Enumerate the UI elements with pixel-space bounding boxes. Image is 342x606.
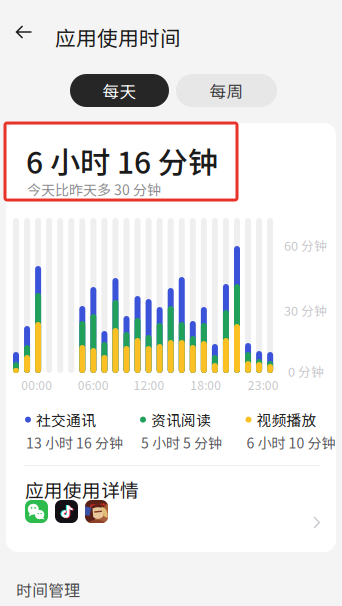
staticText: 6 小时 16 分钟 (26, 139, 218, 182)
staticText: 18:00 (190, 376, 221, 393)
staticText: 6 小时 10 分钟 (246, 432, 335, 452)
staticText: 每周 (209, 78, 243, 102)
staticText: 30 分钟 (284, 301, 327, 319)
staticText: 时间管理 (16, 578, 80, 601)
staticText: 06:00 (78, 376, 109, 393)
staticText: 00:00 (21, 376, 52, 393)
staticText: 社交通讯 (36, 409, 96, 430)
staticText: 每天 (102, 78, 136, 102)
staticText: 12:00 (133, 376, 164, 393)
button[interactable]: 每天 (70, 74, 169, 107)
button[interactable]: 应用使用详情 (19, 472, 333, 549)
staticText: 5 小时 5 分钟 (141, 432, 222, 452)
staticText: 视频播放 (256, 409, 316, 430)
staticText: 应用使用时间 (55, 22, 181, 52)
staticText: 0 分钟 (288, 362, 324, 380)
staticText: 13 小时 16 分钟 (26, 432, 123, 452)
staticText: 23:00 (248, 376, 279, 393)
staticText: 应用使用详情 (25, 476, 139, 503)
staticText: 资讯阅读 (151, 409, 211, 430)
staticText: 60 分钟 (284, 236, 327, 254)
button[interactable]: Back (4, 12, 44, 52)
button[interactable]: 每周 (176, 74, 277, 107)
staticText: 今天比昨天多 30 分钟 (27, 179, 161, 199)
